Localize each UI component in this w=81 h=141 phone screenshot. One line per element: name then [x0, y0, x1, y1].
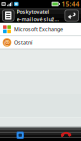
staticText: Microsoft Exchange — [14, 26, 63, 33]
button[interactable]: Home — [0, 126, 40, 141]
staticText: @ — [4, 38, 10, 47]
staticText: 15:44 — [61, 0, 79, 8]
button[interactable]: @ — [0, 36, 81, 49]
staticText: Poskytovatel — [16, 8, 49, 15]
button[interactable]: End call — [40, 126, 81, 141]
button[interactable]: Back — [64, 9, 79, 21]
button[interactable]: Microsoft Exchange — [0, 23, 81, 35]
staticText: e-mailové služ… — [16, 16, 58, 23]
staticText: Ostatní — [14, 39, 32, 46]
